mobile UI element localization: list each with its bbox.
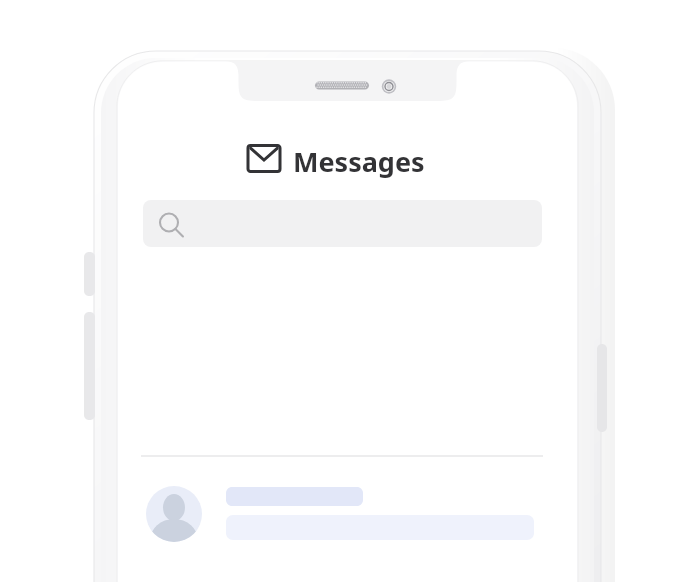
button[interactable] xyxy=(248,142,444,178)
button[interactable]: Conversation xyxy=(141,470,543,560)
button[interactable]: Search xyxy=(143,200,542,247)
